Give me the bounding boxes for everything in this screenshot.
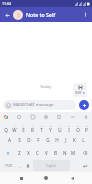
button[interactable]: Back [2,10,12,20]
button[interactable]: Send [79,100,89,110]
staticText: R [31,127,34,133]
button[interactable]: B [51,146,60,159]
button[interactable]: V [42,146,51,159]
staticText: Z [18,150,21,156]
button[interactable]: MAXECHAT message [3,100,76,110]
button[interactable]: 3 [19,122,28,134]
button[interactable]: C [33,146,42,159]
button[interactable]: 4 [28,122,37,134]
staticText: 5 [41,124,43,127]
button[interactable]: Google [3,114,9,120]
staticText: MAXECHAT message [13,102,54,108]
button[interactable]: F [34,134,43,146]
button[interactable]: 1 [1,122,10,134]
staticText: L [82,137,85,143]
staticText: Today [40,84,52,89]
staticText: O [76,127,80,133]
button[interactable]: English [33,160,70,171]
staticText: T [40,127,43,133]
staticText: 9 [77,124,79,127]
button[interactable]: 8 [64,122,73,134]
staticText: 11:04 [2,1,11,6]
button[interactable]: settings [43,114,49,120]
button[interactable]: H [52,134,61,146]
button[interactable]: J [61,134,70,146]
staticText: U [58,127,62,133]
button[interactable]: A [4,134,14,146]
button[interactable]: 2 [10,122,19,134]
button[interactable]: X [24,146,33,159]
staticText: . [74,163,76,169]
button[interactable]: clipboard [56,114,62,120]
button[interactable]: Z [15,146,24,159]
button[interactable]: 0 [82,122,91,134]
button[interactable]: Recent apps [67,173,77,183]
staticText: NOW [75,91,82,95]
button[interactable]: Voice input [24,160,32,171]
button[interactable]: Voice input [83,114,89,120]
staticText: H [55,137,59,143]
staticText: D [27,137,31,143]
button[interactable]: More [70,114,76,120]
staticText: V [45,150,48,156]
button[interactable]: L [79,134,88,146]
staticText: , [19,163,21,169]
button[interactable]: Back [16,173,26,183]
staticText: Q [4,127,8,133]
button[interactable]: 7 [55,122,64,134]
button[interactable]: Enter [79,160,91,171]
staticText: 6 [50,124,52,127]
staticText: 3 [23,124,25,127]
button[interactable]: sticker [16,114,22,120]
staticText: 1 [5,124,7,127]
staticText: 0 [86,124,88,127]
staticText: N [63,150,67,156]
staticText: J [65,137,67,143]
staticText: 2 [14,124,16,127]
staticText: 7 [59,124,61,127]
button[interactable]: 6 [46,122,55,134]
button[interactable]: 9 [73,122,82,134]
staticText: C [36,150,39,156]
staticText: 4 [32,124,34,127]
button[interactable]: More options [81,10,90,19]
staticText: F [37,137,40,143]
button[interactable]: M [69,146,78,159]
staticText: English [46,164,57,168]
button[interactable]: 5 [37,122,46,134]
button[interactable]: gif [30,114,36,120]
staticText: M [71,150,76,156]
button[interactable]: Shift [1,146,15,159]
staticText: Y [49,127,52,133]
staticText: S [18,137,21,143]
button[interactable]: NOW [73,83,87,97]
staticText: 8 [68,124,70,127]
button[interactable]: Home [41,173,51,183]
staticText: X [27,150,30,156]
staticText: ?123 [5,164,12,168]
button[interactable]: K [70,134,79,146]
staticText: Note to Self [26,11,56,18]
button[interactable]: Contact photo [13,10,23,20]
button[interactable]: D [24,134,34,146]
staticText: K [73,137,76,143]
button[interactable]: N [60,146,69,159]
staticText: P [85,127,88,133]
button[interactable]: Note to Self [26,11,81,18]
staticText: B [54,150,57,156]
staticText: W [12,127,17,133]
staticText: E [22,127,25,133]
staticText: A [8,137,11,143]
button[interactable]: Comma [16,160,24,171]
staticText: I [68,127,70,133]
button[interactable]: G [43,134,52,146]
button[interactable]: Backspace [78,146,91,159]
button[interactable]: S [14,134,24,146]
staticText: G [46,137,50,143]
button[interactable]: ?123 [1,160,16,171]
